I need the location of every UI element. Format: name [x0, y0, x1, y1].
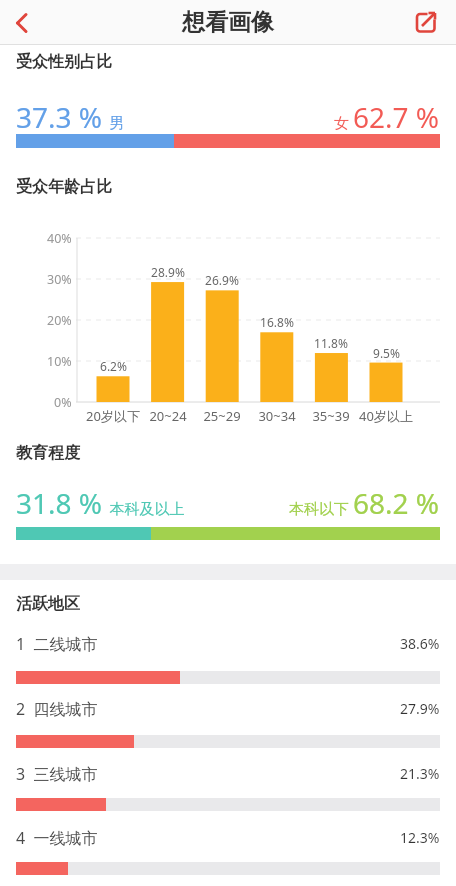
- staticText: 受众年龄占比: [16, 177, 112, 197]
- staticText: 1 二线城市: [16, 633, 98, 655]
- staticText: 受众性别占比: [16, 52, 112, 72]
- staticText: 25~29: [203, 407, 241, 425]
- staticText: 26.9%: [205, 272, 239, 288]
- staticText: 12.3%: [400, 828, 440, 847]
- button[interactable]: [408, 0, 456, 45]
- staticText: 0%: [54, 394, 72, 411]
- staticText: 9.5%: [373, 345, 400, 361]
- staticText: 35~39: [312, 407, 350, 425]
- staticText: 本科以下 68.2 %: [289, 484, 440, 522]
- staticText: 27.9%: [400, 699, 440, 718]
- staticText: 6.2%: [100, 358, 127, 374]
- staticText: 2 四线城市: [16, 698, 98, 720]
- staticText: 女 62.7 %: [334, 98, 440, 136]
- staticText: 37.3 % 男: [16, 98, 125, 136]
- staticText: 20~24: [149, 407, 187, 425]
- staticText: 20岁以下: [86, 407, 140, 425]
- staticText: 11.8%: [314, 335, 348, 351]
- staticText: 想看画像: [182, 8, 274, 37]
- button[interactable]: [0, 0, 44, 45]
- staticText: 40%: [47, 230, 72, 247]
- staticText: 28.9%: [151, 264, 185, 280]
- staticText: 活跃地区: [16, 594, 80, 614]
- staticText: 31.8 % 本科及以上: [16, 484, 185, 522]
- staticText: 16.8%: [260, 314, 294, 330]
- staticText: 38.6%: [400, 634, 440, 653]
- staticText: 4 一线城市: [16, 827, 98, 849]
- staticText: 30%: [47, 271, 72, 288]
- staticText: 40岁以上: [359, 407, 413, 425]
- staticText: 30~34: [258, 407, 296, 425]
- staticText: 21.3%: [400, 764, 440, 783]
- staticText: 教育程度: [16, 443, 80, 463]
- staticText: 3 三线城市: [16, 763, 98, 785]
- staticText: 20%: [47, 312, 72, 329]
- staticText: 10%: [47, 353, 72, 370]
